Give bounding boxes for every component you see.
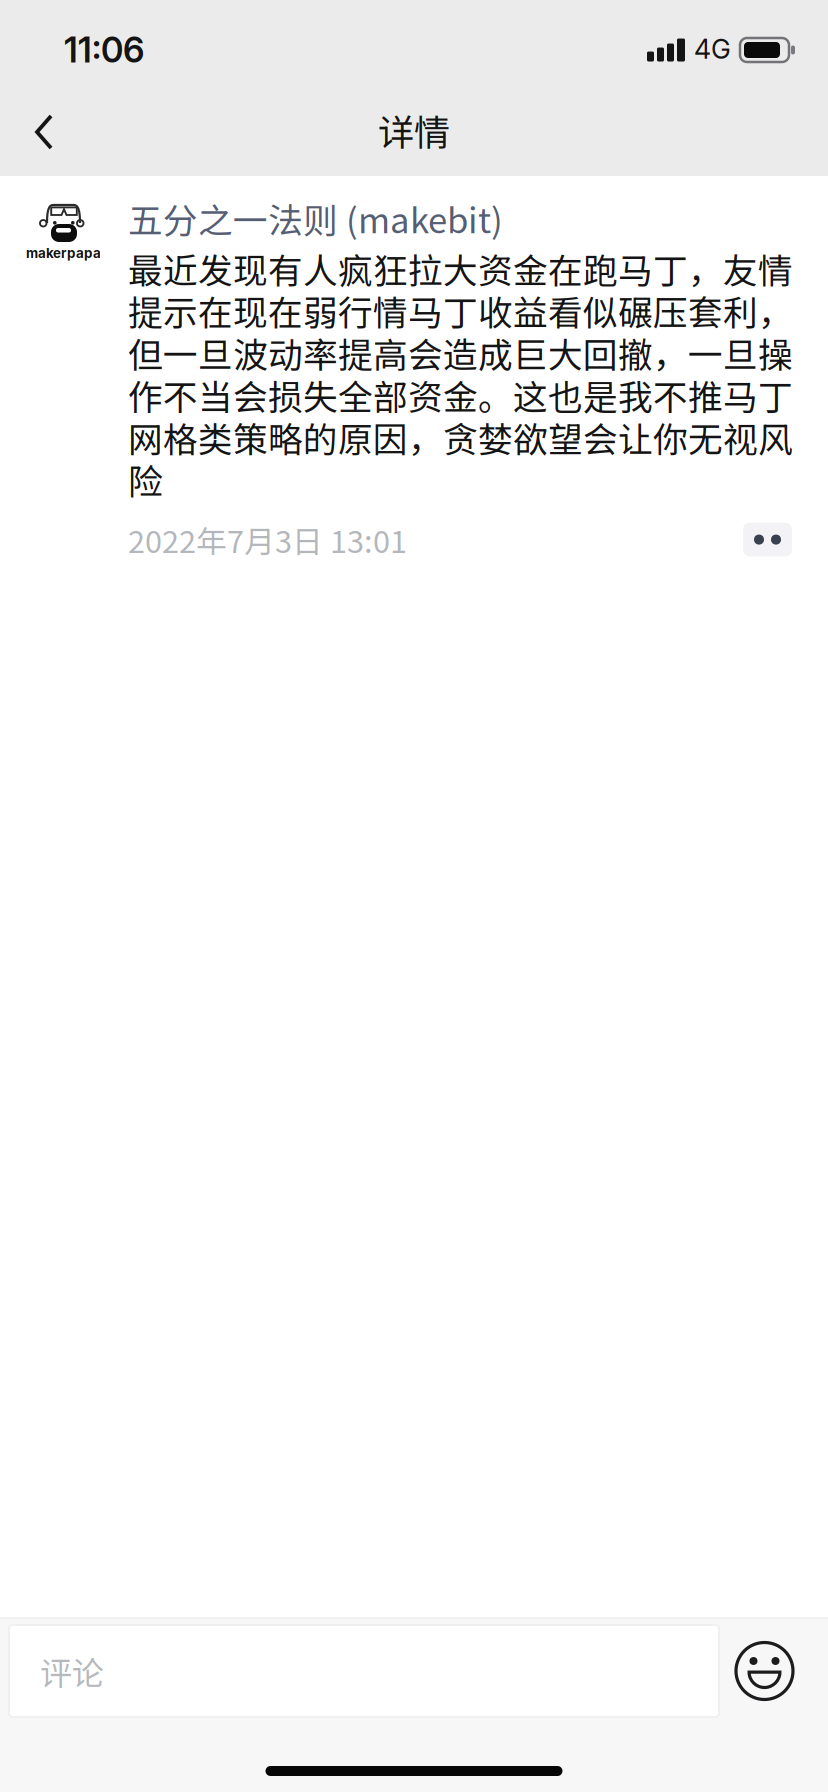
staticText: 最近发现有人疯狂拉大资金在跑马丁，友情提示在现在弱行情马丁收益看似碾压套利，但一… <box>128 243 793 504</box>
staticText: 4G <box>694 33 731 65</box>
button[interactable]: Back <box>0 88 88 176</box>
button[interactable]: More options <box>743 523 792 557</box>
staticText: makerpapa <box>26 245 101 261</box>
staticText: 评论 <box>40 1648 104 1694</box>
button[interactable]: Emoji <box>719 1625 810 1717</box>
staticText: 2022年7月3日 13:01 <box>128 517 407 562</box>
button[interactable]: 五分之一法则 (makebit) <box>128 176 503 243</box>
staticText: 11:06 <box>64 29 144 71</box>
staticText: 五分之一法则 (makebit) <box>128 193 503 243</box>
staticText: 详情 <box>378 104 450 156</box>
button[interactable]: 评论 <box>9 1625 719 1717</box>
